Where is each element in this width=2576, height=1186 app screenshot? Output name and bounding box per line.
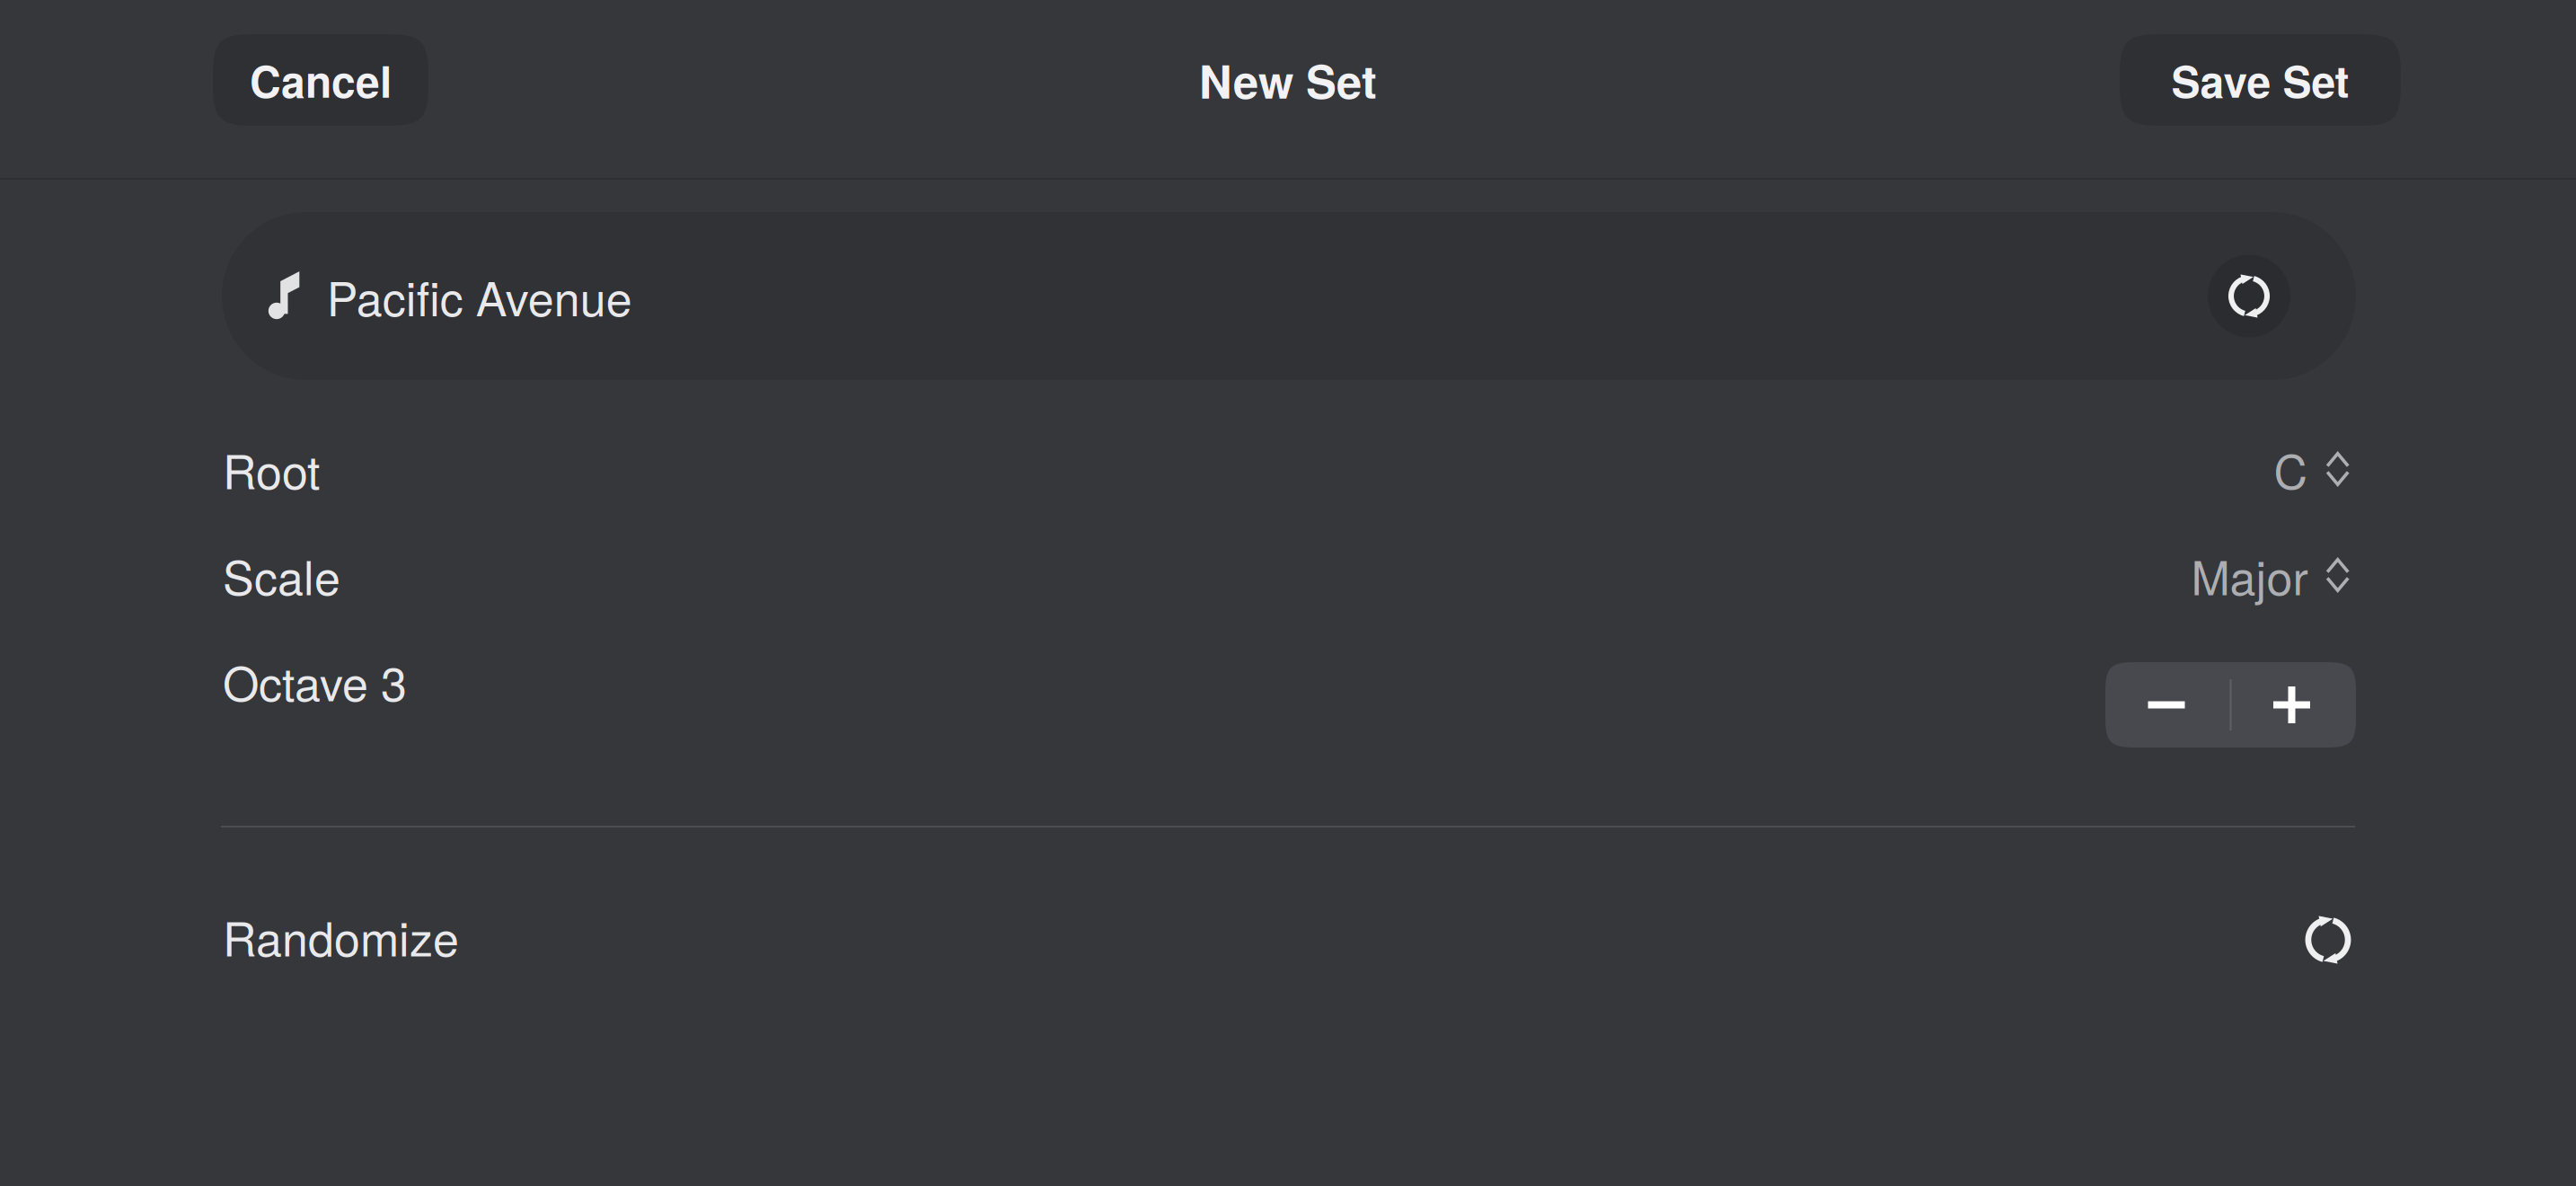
button[interactable]: Shuffle set name (2208, 255, 2290, 337)
staticText: C (2274, 436, 2308, 503)
button[interactable]: Scale (0, 522, 2576, 628)
staticText: Octave 3 (223, 648, 407, 715)
staticText: Cancel (250, 49, 392, 111)
button[interactable]: Increase octave (2228, 662, 2356, 748)
staticText: Major (2191, 542, 2308, 609)
button[interactable]: Randomize (0, 883, 2576, 989)
button[interactable]: Decrease octave (2105, 662, 2228, 748)
staticText: Scale (223, 542, 340, 609)
staticText: Randomize (223, 903, 459, 970)
button[interactable]: Save Set (2120, 34, 2401, 126)
staticText: Pacific Avenue (327, 263, 632, 330)
staticText: New Set (1199, 47, 1377, 113)
staticText: Root (223, 436, 320, 503)
button[interactable]: Cancel (213, 34, 428, 126)
button[interactable]: Root (0, 416, 2576, 522)
staticText: Save Set (2171, 49, 2349, 111)
